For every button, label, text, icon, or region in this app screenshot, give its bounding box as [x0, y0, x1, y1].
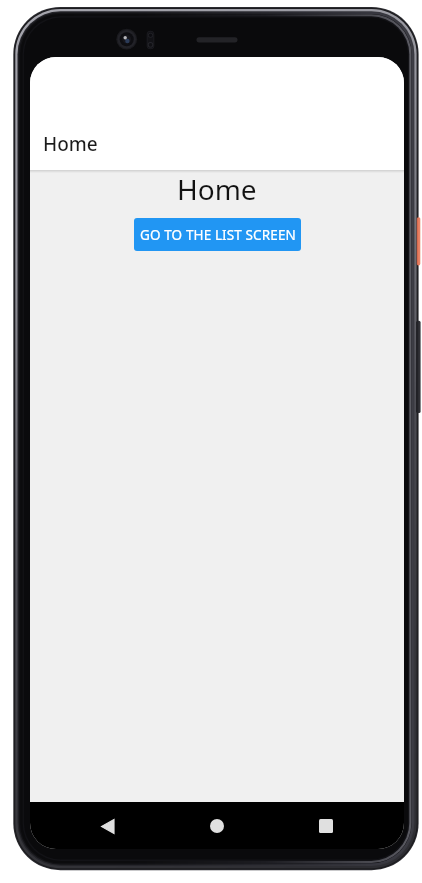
- button[interactable]: GO TO THE LIST SCREEN: [134, 218, 301, 251]
- button[interactable]: Back: [89, 808, 125, 844]
- staticText: Home: [43, 131, 98, 157]
- staticText: Home: [177, 170, 257, 206]
- button[interactable]: Recents: [308, 808, 344, 844]
- button[interactable]: Home: [199, 808, 235, 844]
- staticText: GO TO THE LIST SCREEN: [140, 226, 296, 244]
